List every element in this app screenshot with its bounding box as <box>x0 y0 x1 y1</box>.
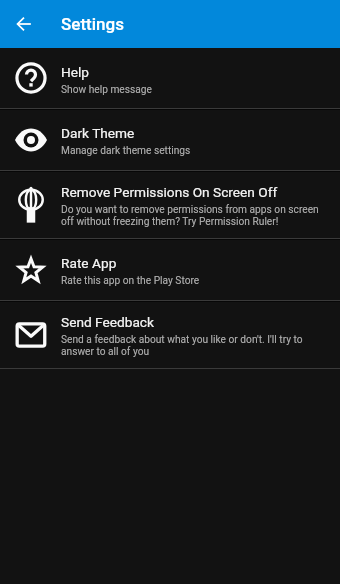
staticText: Rate App <box>61 255 117 271</box>
button[interactable]: Rate App <box>0 239 340 300</box>
staticText: Show help message <box>61 84 152 96</box>
staticText: Dark Theme <box>61 125 135 141</box>
staticText: Manage dark theme settings <box>61 145 191 157</box>
staticText: Do you want to remove permissions from a… <box>61 204 324 228</box>
button[interactable]: Help <box>0 48 340 108</box>
button[interactable]: Back <box>0 0 48 48</box>
staticText: Send Feedback <box>61 314 154 330</box>
staticText: Send a feedback about what you like or d… <box>61 334 324 358</box>
staticText: Remove Permissions On Screen Off <box>61 184 278 200</box>
button[interactable]: Remove Permissions On Screen Off <box>0 171 340 238</box>
button[interactable]: Send Feedback <box>0 301 340 368</box>
staticText: Settings <box>61 14 124 34</box>
staticText: Rate this app on the Play Store <box>61 275 200 287</box>
button[interactable]: Dark Theme <box>0 109 340 170</box>
staticText: Help <box>61 64 90 80</box>
